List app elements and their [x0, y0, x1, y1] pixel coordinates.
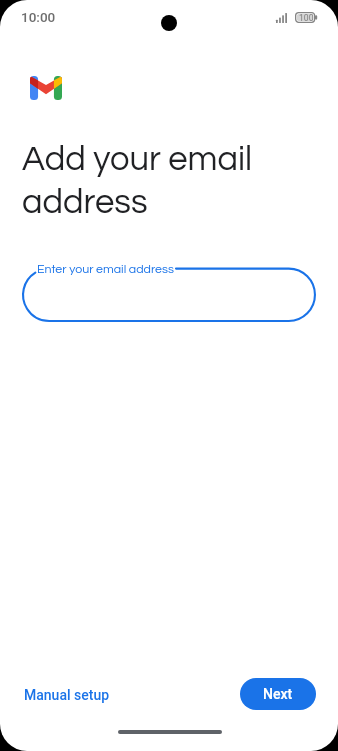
- button[interactable]: Next: [240, 678, 316, 710]
- staticText: Next: [263, 686, 293, 702]
- staticText: Enter your email address: [37, 263, 174, 276]
- staticText: 100: [299, 13, 314, 23]
- staticText: Manual setup: [24, 687, 110, 703]
- staticText: 10:00: [21, 9, 56, 25]
- button[interactable]: Manual setup: [16, 681, 118, 709]
- staticText: Add your email address: [22, 142, 253, 220]
